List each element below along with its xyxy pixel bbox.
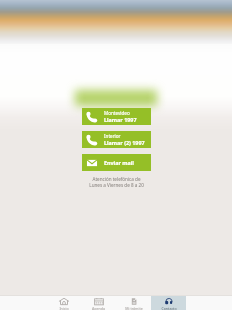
button[interactable]: Inicio (46, 296, 81, 310)
button[interactable]: Montevideo (82, 108, 151, 125)
staticText: Inicio (59, 306, 69, 310)
staticText: Atención telefónica de (92, 176, 141, 182)
button[interactable]: Agenda (81, 296, 116, 310)
button[interactable]: Contacto (151, 296, 186, 310)
staticText: Montevideo (104, 110, 130, 116)
staticText: Lunes a Viernes de 8 a 20 (89, 182, 144, 188)
staticText: Interior (104, 133, 121, 139)
staticText: Llamar 1997 (104, 116, 137, 123)
staticText: Mi trámite (125, 306, 143, 310)
staticText: Llamar (2) 1997 (104, 139, 145, 146)
staticText: Enviar mail (104, 159, 134, 166)
button[interactable]: Enviar mail (82, 154, 151, 171)
staticText: Agenda (92, 306, 105, 310)
staticText: Contacto (161, 306, 177, 310)
button[interactable]: Mi trámite (116, 296, 151, 310)
button[interactable]: Interior (82, 131, 151, 148)
